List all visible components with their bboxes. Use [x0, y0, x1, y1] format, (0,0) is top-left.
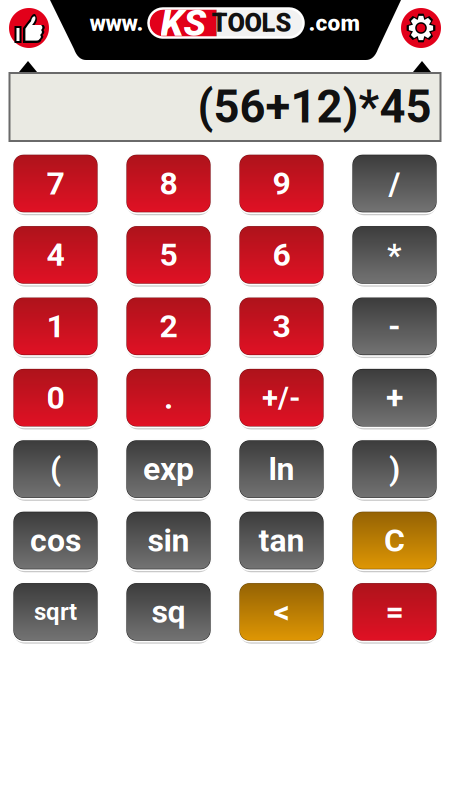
button[interactable]: 5 [125, 224, 212, 285]
staticText: 8 [159, 165, 177, 202]
button[interactable]: sqrt [12, 581, 99, 642]
staticText: 0 [46, 379, 64, 416]
staticText: - [388, 308, 401, 345]
staticText: tan [258, 522, 304, 559]
staticText: sqrt [34, 598, 77, 626]
button[interactable]: Like [9, 8, 49, 48]
staticText: sin [147, 522, 189, 559]
staticText: + [386, 379, 403, 416]
button[interactable]: exp [125, 439, 212, 500]
staticText: 2 [159, 308, 177, 345]
staticText: (56+12)*45 [197, 80, 431, 133]
staticText: 5 [159, 236, 177, 274]
staticText: . [164, 379, 173, 416]
button[interactable]: tan [238, 510, 325, 571]
staticText: ln [268, 450, 294, 488]
button[interactable]: = [351, 581, 438, 642]
button[interactable]: sq [125, 581, 212, 642]
staticText: ( [50, 450, 61, 488]
button[interactable]: 8 [125, 153, 212, 214]
button[interactable]: < [238, 581, 325, 642]
button[interactable]: C [351, 510, 438, 571]
button[interactable]: 3 [238, 296, 325, 357]
button[interactable]: / [351, 153, 438, 214]
button[interactable]: 6 [238, 224, 325, 285]
staticText: * [387, 236, 402, 274]
staticText: TOOLS [211, 8, 291, 38]
staticText: / [388, 165, 400, 202]
staticText: = [385, 593, 403, 631]
button[interactable]: . [125, 367, 212, 428]
button[interactable]: * [351, 224, 438, 285]
button[interactable]: 4 [12, 224, 99, 285]
button[interactable]: 7 [12, 153, 99, 214]
button[interactable]: Settings [401, 8, 441, 48]
button[interactable]: +/- [238, 367, 325, 428]
button[interactable]: cos [12, 510, 99, 571]
button[interactable]: 9 [238, 153, 325, 214]
staticText: sq [151, 593, 185, 631]
button[interactable]: ( [12, 439, 99, 500]
staticText: 6 [272, 236, 290, 274]
staticText: exp [143, 450, 194, 488]
button[interactable]: 2 [125, 296, 212, 357]
button[interactable]: ) [351, 439, 438, 500]
button[interactable]: sin [125, 510, 212, 571]
staticText: 7 [46, 165, 64, 202]
button[interactable]: 0 [12, 367, 99, 428]
staticText: +/- [262, 380, 301, 415]
staticText: C [384, 522, 405, 559]
staticText: < [273, 593, 289, 631]
staticText: 3 [272, 308, 290, 345]
button[interactable]: + [351, 367, 438, 428]
staticText: www. [89, 10, 143, 36]
staticText: cos [30, 522, 81, 559]
button[interactable]: - [351, 296, 438, 357]
button[interactable]: 1 [12, 296, 99, 357]
staticText: .com [308, 10, 360, 36]
staticText: KS [160, 1, 206, 45]
button[interactable]: ln [238, 439, 325, 500]
staticText: 1 [46, 308, 64, 345]
staticText: 4 [46, 236, 64, 274]
staticText: ) [389, 450, 400, 488]
staticText: 9 [272, 165, 290, 202]
